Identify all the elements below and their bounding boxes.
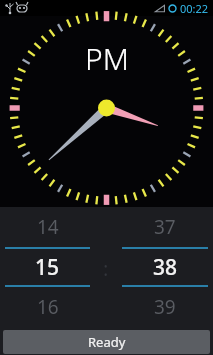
button[interactable]: Ready xyxy=(3,330,210,354)
button[interactable]: 14 xyxy=(0,207,95,329)
button[interactable]: 37 xyxy=(117,207,213,329)
staticText: 00:22 xyxy=(180,1,209,16)
staticText: 15 xyxy=(35,253,60,282)
staticText: Ready xyxy=(88,333,126,351)
staticText: 39 xyxy=(154,294,176,320)
staticText: 38 xyxy=(153,253,178,282)
staticText: : xyxy=(103,255,109,282)
staticText: 14 xyxy=(37,214,59,240)
staticText: 37 xyxy=(154,214,176,240)
staticText: 16 xyxy=(37,294,59,320)
button[interactable]: PM xyxy=(85,38,129,79)
